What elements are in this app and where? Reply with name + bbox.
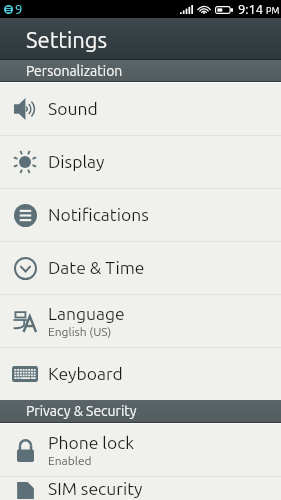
staticText: Language: [48, 304, 125, 324]
staticText: Sound: [48, 99, 98, 119]
button[interactable]: Sound: [0, 83, 281, 135]
staticText: SIM security: [48, 479, 143, 499]
staticText: 9: [15, 2, 23, 17]
button[interactable]: Keyboard: [0, 348, 281, 400]
button[interactable]: Language: [0, 295, 281, 347]
staticText: Phone lock: [48, 433, 135, 453]
button[interactable]: Phone lock: [0, 424, 281, 476]
staticText: Privacy & Security: [26, 403, 137, 419]
staticText: Keyboard: [48, 364, 123, 384]
staticText: PM: [266, 6, 280, 16]
staticText: Personalization: [26, 63, 123, 79]
staticText: Display: [48, 152, 105, 172]
staticText: Date & Time: [48, 258, 145, 278]
staticText: Notifications: [48, 205, 149, 225]
staticText: Settings: [26, 27, 108, 52]
staticText: Enabled: [48, 454, 92, 467]
button[interactable]: Notifications: [0, 189, 281, 241]
button[interactable]: Date & Time: [0, 242, 281, 294]
staticText: 9:14: [238, 2, 264, 17]
staticText: English (US): [48, 325, 112, 338]
button[interactable]: Display: [0, 136, 281, 188]
button[interactable]: SIM security: [0, 477, 281, 500]
